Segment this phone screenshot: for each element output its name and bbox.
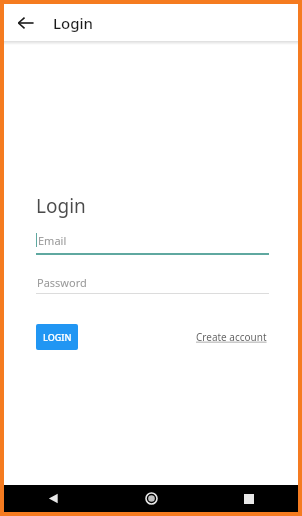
button[interactable]: Back: [10, 7, 42, 39]
button[interactable]: Home: [102, 485, 200, 512]
button[interactable]: Recent apps: [200, 485, 298, 512]
staticText: Create account: [196, 330, 267, 344]
staticText: Login: [53, 13, 93, 33]
button[interactable]: Back: [4, 485, 102, 512]
staticText: Login: [36, 193, 86, 219]
button[interactable]: LOGIN: [36, 324, 78, 350]
button[interactable]: Email: [36, 231, 269, 253]
button[interactable]: Password: [36, 273, 269, 293]
staticText: Email: [38, 233, 67, 248]
staticText: LOGIN: [43, 331, 72, 343]
staticText: Password: [37, 275, 87, 290]
button[interactable]: Create account: [194, 326, 269, 348]
